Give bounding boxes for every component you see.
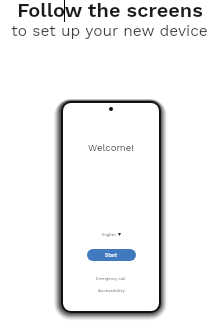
button[interactable]: Start: [87, 249, 136, 261]
staticText: Follow the screens: [17, 0, 203, 21]
staticText: English: [102, 232, 116, 237]
button[interactable]: Select language, English: [100, 231, 123, 238]
staticText: Emergency call: [96, 276, 126, 281]
button[interactable]: Accessibility: [97, 287, 126, 294]
staticText: Welcome!: [88, 142, 134, 153]
button[interactable]: Emergency call: [95, 275, 127, 282]
staticText: Start: [105, 252, 118, 258]
staticText: Accessibility: [98, 288, 125, 293]
staticText: to set up your new device: [11, 22, 208, 40]
